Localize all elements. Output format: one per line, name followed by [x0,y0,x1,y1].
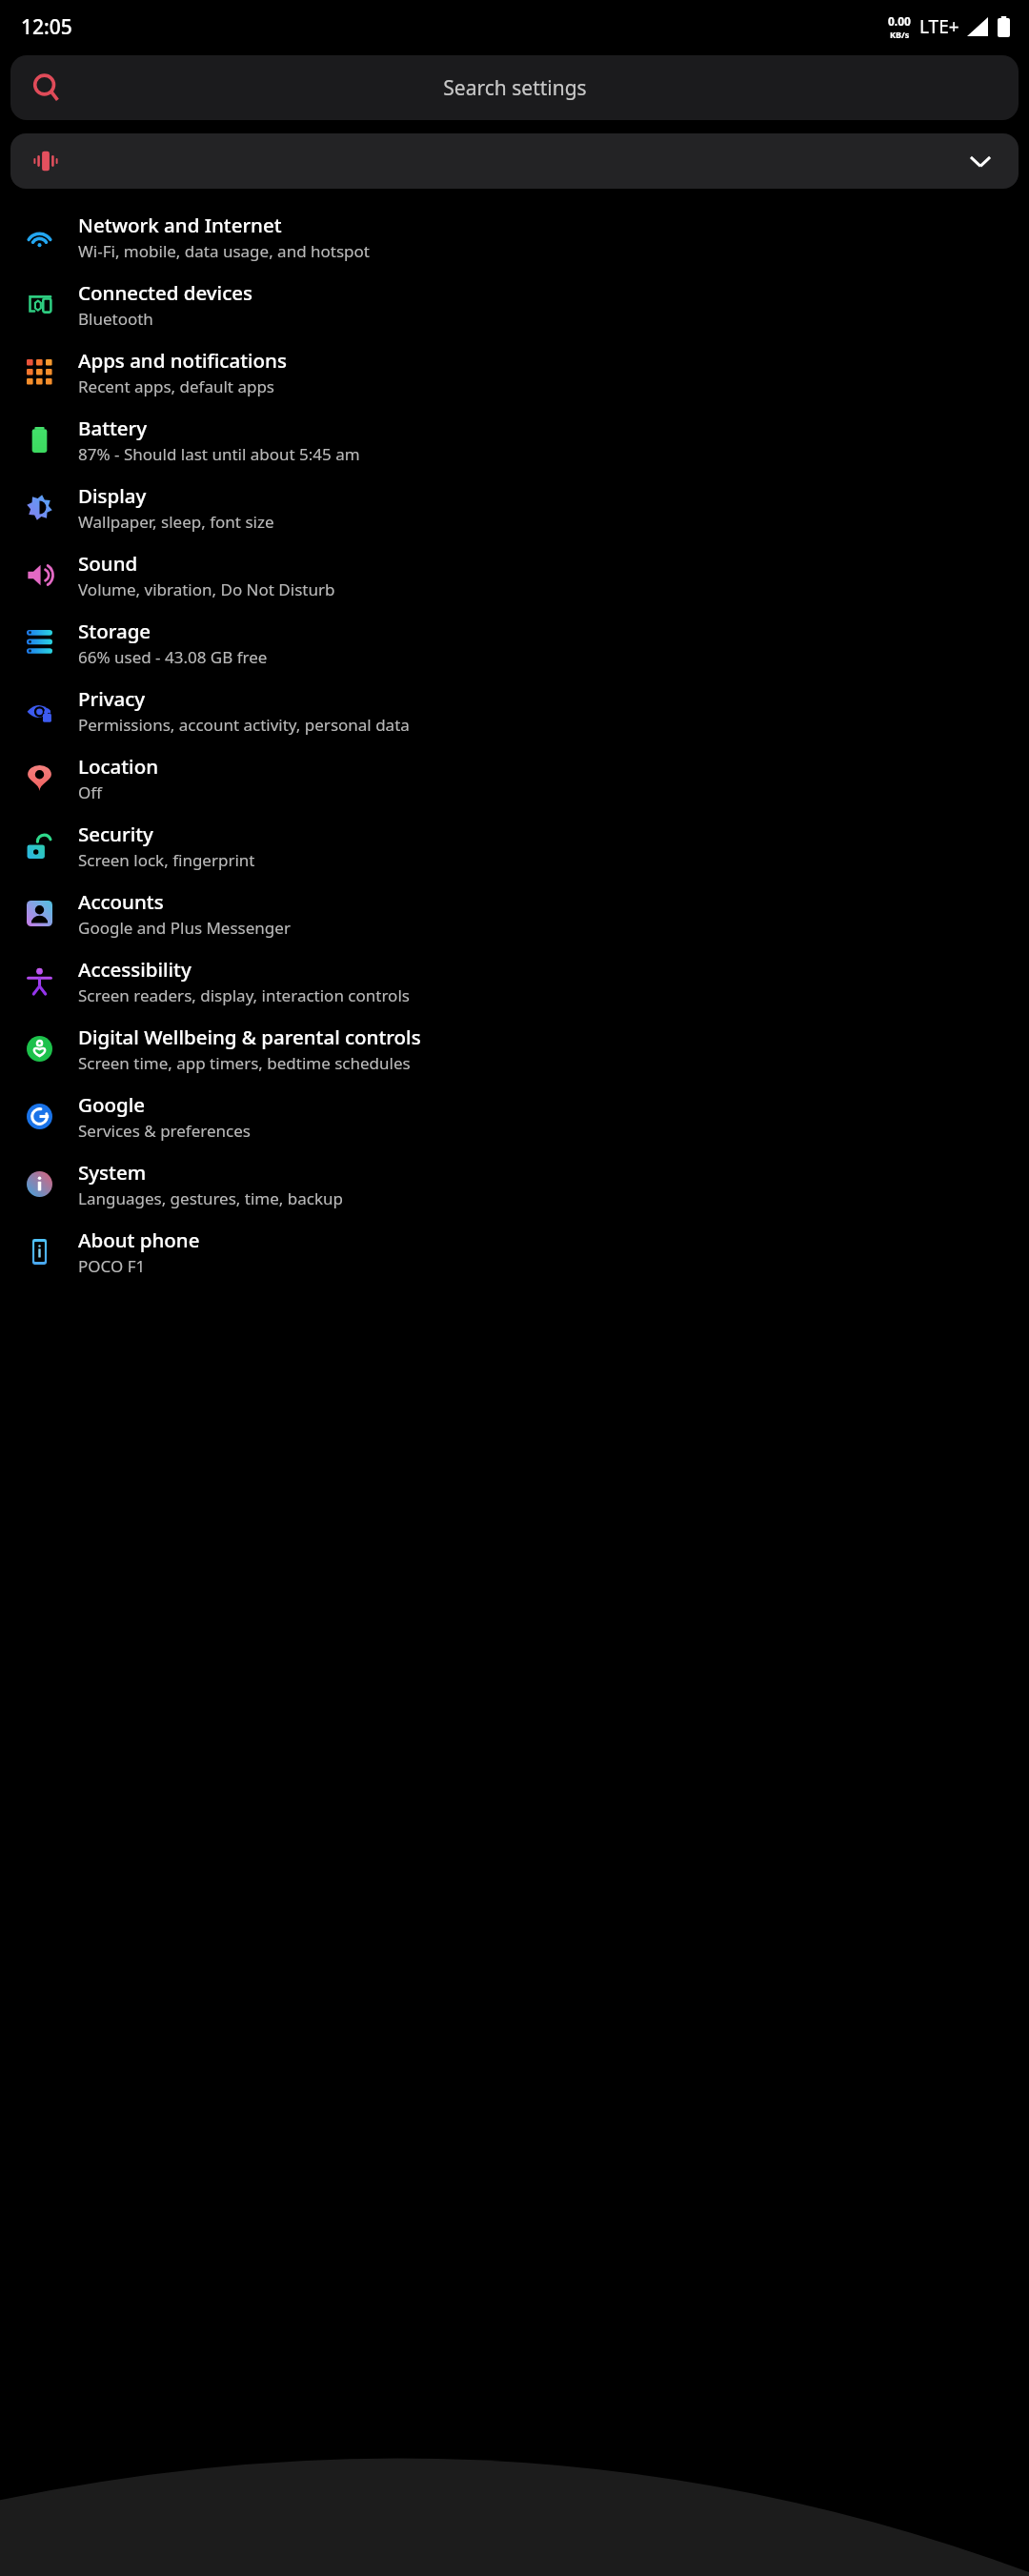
staticText: About phone [78,1227,200,1253]
staticText: Bluetooth [78,308,153,330]
staticText: POCO F1 [78,1255,146,1277]
button[interactable]: Ringer mode vibrate, expand [10,133,1019,189]
button[interactable]: Security [0,812,1029,880]
staticText: Google [78,1091,145,1118]
button[interactable]: Display [0,474,1029,541]
button[interactable]: About phone [0,1218,1029,1286]
button[interactable]: Digital Wellbeing & parental controls [0,1015,1029,1083]
button[interactable]: Google [0,1083,1029,1150]
staticText: Sound [78,550,138,577]
staticText: Security [78,821,153,847]
staticText: Digital Wellbeing & parental controls [78,1024,421,1050]
button[interactable]: Accessibility [0,947,1029,1015]
staticText: LTE+ [919,14,959,39]
staticText: Screen readers, display, interaction con… [78,984,410,1006]
button[interactable]: Network and Internet [0,203,1029,271]
staticText: Languages, gestures, time, backup [78,1187,344,1209]
staticText: Battery [78,415,148,441]
button[interactable]: Connected devices [0,271,1029,338]
staticText: Permissions, account activity, personal … [78,714,410,736]
staticText: Recent apps, default apps [78,375,275,397]
staticText: Storage [78,618,151,644]
button[interactable]: Search settings [10,55,1019,120]
staticText: Wallpaper, sleep, font size [78,511,274,533]
staticText: System [78,1159,147,1186]
staticText: Screen lock, fingerprint [78,849,255,871]
staticText: Connected devices [78,279,252,306]
staticText: Wi-Fi, mobile, data usage, and hotspot [78,240,370,262]
button[interactable]: Sound [0,541,1029,609]
staticText: Volume, vibration, Do Not Disturb [78,578,335,600]
button[interactable]: Storage [0,609,1029,677]
staticText: Apps and notifications [78,347,287,374]
staticText: Display [78,482,147,509]
staticText: Privacy [78,685,146,712]
staticText: 87% - Should last until about 5:45 am [78,443,360,465]
button[interactable]: Location [0,744,1029,812]
button[interactable]: Privacy [0,677,1029,744]
staticText: Search settings [443,74,587,102]
staticText: Google and Plus Messenger [78,917,291,939]
staticText: Services & preferences [78,1120,251,1142]
button[interactable]: Apps and notifications [0,338,1029,406]
staticText: 12:05 [21,13,72,41]
staticText: 66% used - 43.08 GB free [78,646,268,668]
staticText: KB/s [890,29,910,40]
staticText: Accessibility [78,956,192,983]
staticText: 0.00 [888,13,911,29]
staticText: Location [78,753,159,780]
staticText: Network and Internet [78,212,282,238]
button[interactable]: System [0,1150,1029,1218]
staticText: Off [78,781,102,803]
staticText: Screen time, app timers, bedtime schedul… [78,1052,411,1074]
button[interactable]: Accounts [0,880,1029,947]
staticText: Accounts [78,888,164,915]
button[interactable]: Battery [0,406,1029,474]
